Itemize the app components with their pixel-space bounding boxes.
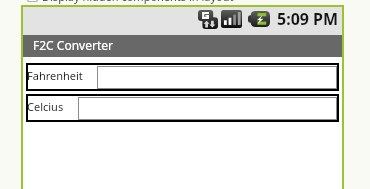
button[interactable]: Celcius	[26, 94, 339, 122]
button[interactable]: Fahrenheit	[26, 63, 339, 91]
staticText: 5:09 PM	[277, 8, 339, 30]
staticText: F2C Converter	[33, 37, 113, 53]
button[interactable]: Fahrenheit value input	[97, 66, 337, 89]
staticText: Display hidden components in layout	[42, 0, 234, 4]
other: Battery charging	[248, 11, 270, 27]
button[interactable]: Display hidden components in layout	[0, 0, 234, 5]
button[interactable]: Celcius value input	[78, 97, 337, 120]
other: Signal strength	[221, 10, 242, 28]
staticText: Fahrenheit	[27, 68, 96, 83]
staticText: Celcius	[27, 99, 77, 114]
other: Mobile data (GPRS)	[198, 10, 218, 29]
